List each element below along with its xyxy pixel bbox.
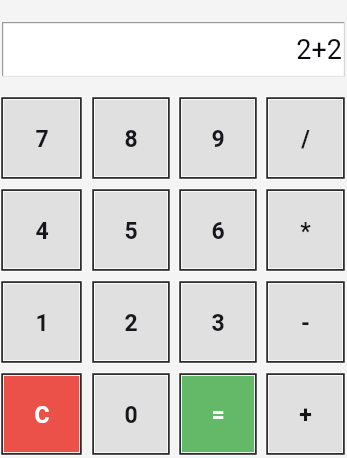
button[interactable]: Equals bbox=[178, 372, 258, 456]
staticText: + bbox=[299, 402, 312, 429]
button[interactable]: Expression display bbox=[2, 22, 345, 77]
staticText: 7 bbox=[35, 126, 49, 153]
staticText: 9 bbox=[211, 126, 225, 153]
staticText: 1 bbox=[35, 310, 49, 337]
button[interactable]: 9 bbox=[178, 96, 258, 180]
staticText: 6 bbox=[211, 218, 225, 245]
staticText: C bbox=[34, 402, 50, 429]
button[interactable]: Add bbox=[265, 372, 346, 456]
staticText: 3 bbox=[211, 310, 225, 337]
button[interactable]: Clear bbox=[0, 372, 83, 456]
button[interactable]: 1 bbox=[0, 280, 83, 364]
button[interactable]: Divide bbox=[265, 96, 346, 180]
staticText: 8 bbox=[124, 126, 138, 153]
staticText: / bbox=[301, 126, 310, 153]
staticText: * bbox=[300, 218, 311, 245]
button[interactable]: 3 bbox=[178, 280, 258, 364]
button[interactable]: 2 bbox=[91, 280, 171, 364]
staticText: = bbox=[211, 402, 225, 429]
button[interactable]: Subtract bbox=[265, 280, 346, 364]
staticText: 5 bbox=[124, 218, 138, 245]
staticText: 2+2 bbox=[296, 34, 342, 66]
button[interactable]: 8 bbox=[91, 96, 171, 180]
button[interactable]: 5 bbox=[91, 188, 171, 272]
button[interactable]: 0 bbox=[91, 372, 171, 456]
button[interactable]: 4 bbox=[0, 188, 83, 272]
staticText: 2 bbox=[124, 310, 138, 337]
button[interactable]: 7 bbox=[0, 96, 83, 180]
staticText: 0 bbox=[124, 402, 138, 429]
staticText: 4 bbox=[35, 218, 49, 245]
button[interactable]: 6 bbox=[178, 188, 258, 272]
button[interactable]: Multiply bbox=[265, 188, 346, 272]
staticText: - bbox=[301, 310, 310, 337]
